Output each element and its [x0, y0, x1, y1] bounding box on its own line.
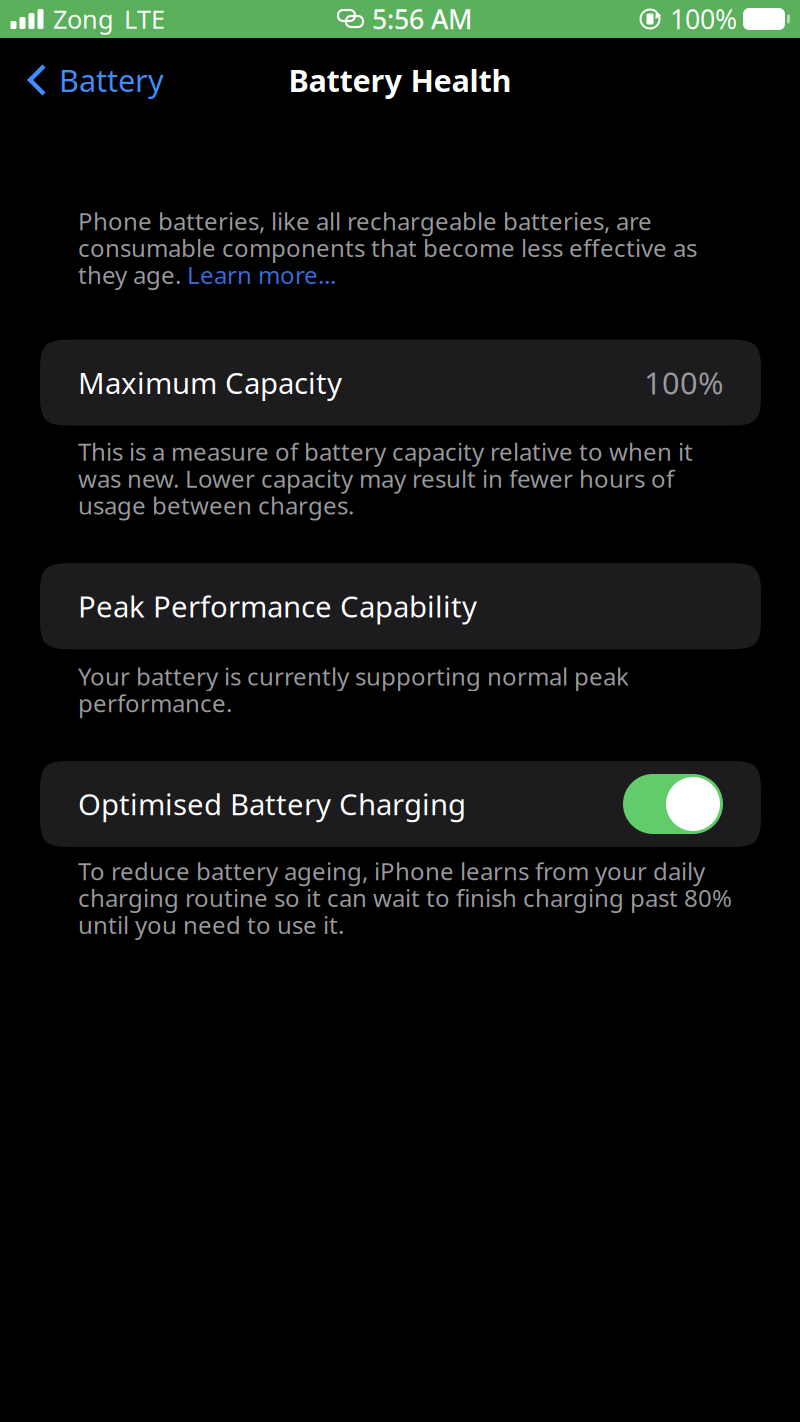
staticText: Optimised Battery Charging: [78, 784, 466, 823]
staticText: Battery Health: [288, 60, 511, 100]
button[interactable]: Optimised Battery Charging: [623, 774, 723, 834]
button[interactable]: Maximum Capacity: [40, 340, 761, 426]
staticText: This is a measure of battery capacity re…: [78, 436, 693, 521]
staticText: To reduce battery ageing, iPhone learns …: [78, 855, 732, 941]
staticText: LTE: [124, 2, 165, 36]
staticText: 100%: [644, 362, 723, 403]
button[interactable]: Learn more: [78, 265, 338, 291]
button[interactable]: Battery: [0, 38, 178, 110]
staticText: Zong: [53, 2, 114, 36]
staticText: 100%: [670, 1, 737, 37]
staticText: Battery: [59, 60, 164, 100]
staticText: Peak Performance Capability: [78, 587, 477, 626]
staticText: Your battery is currently supporting nor…: [78, 660, 629, 719]
staticText: 5:56 AM: [372, 1, 472, 37]
button[interactable]: Optimised Battery Charging: [40, 761, 761, 847]
staticText: Maximum Capacity: [78, 363, 342, 402]
staticText: Phone batteries, like all rechargeable b…: [78, 205, 697, 291]
button[interactable]: Peak Performance Capability: [40, 563, 761, 649]
